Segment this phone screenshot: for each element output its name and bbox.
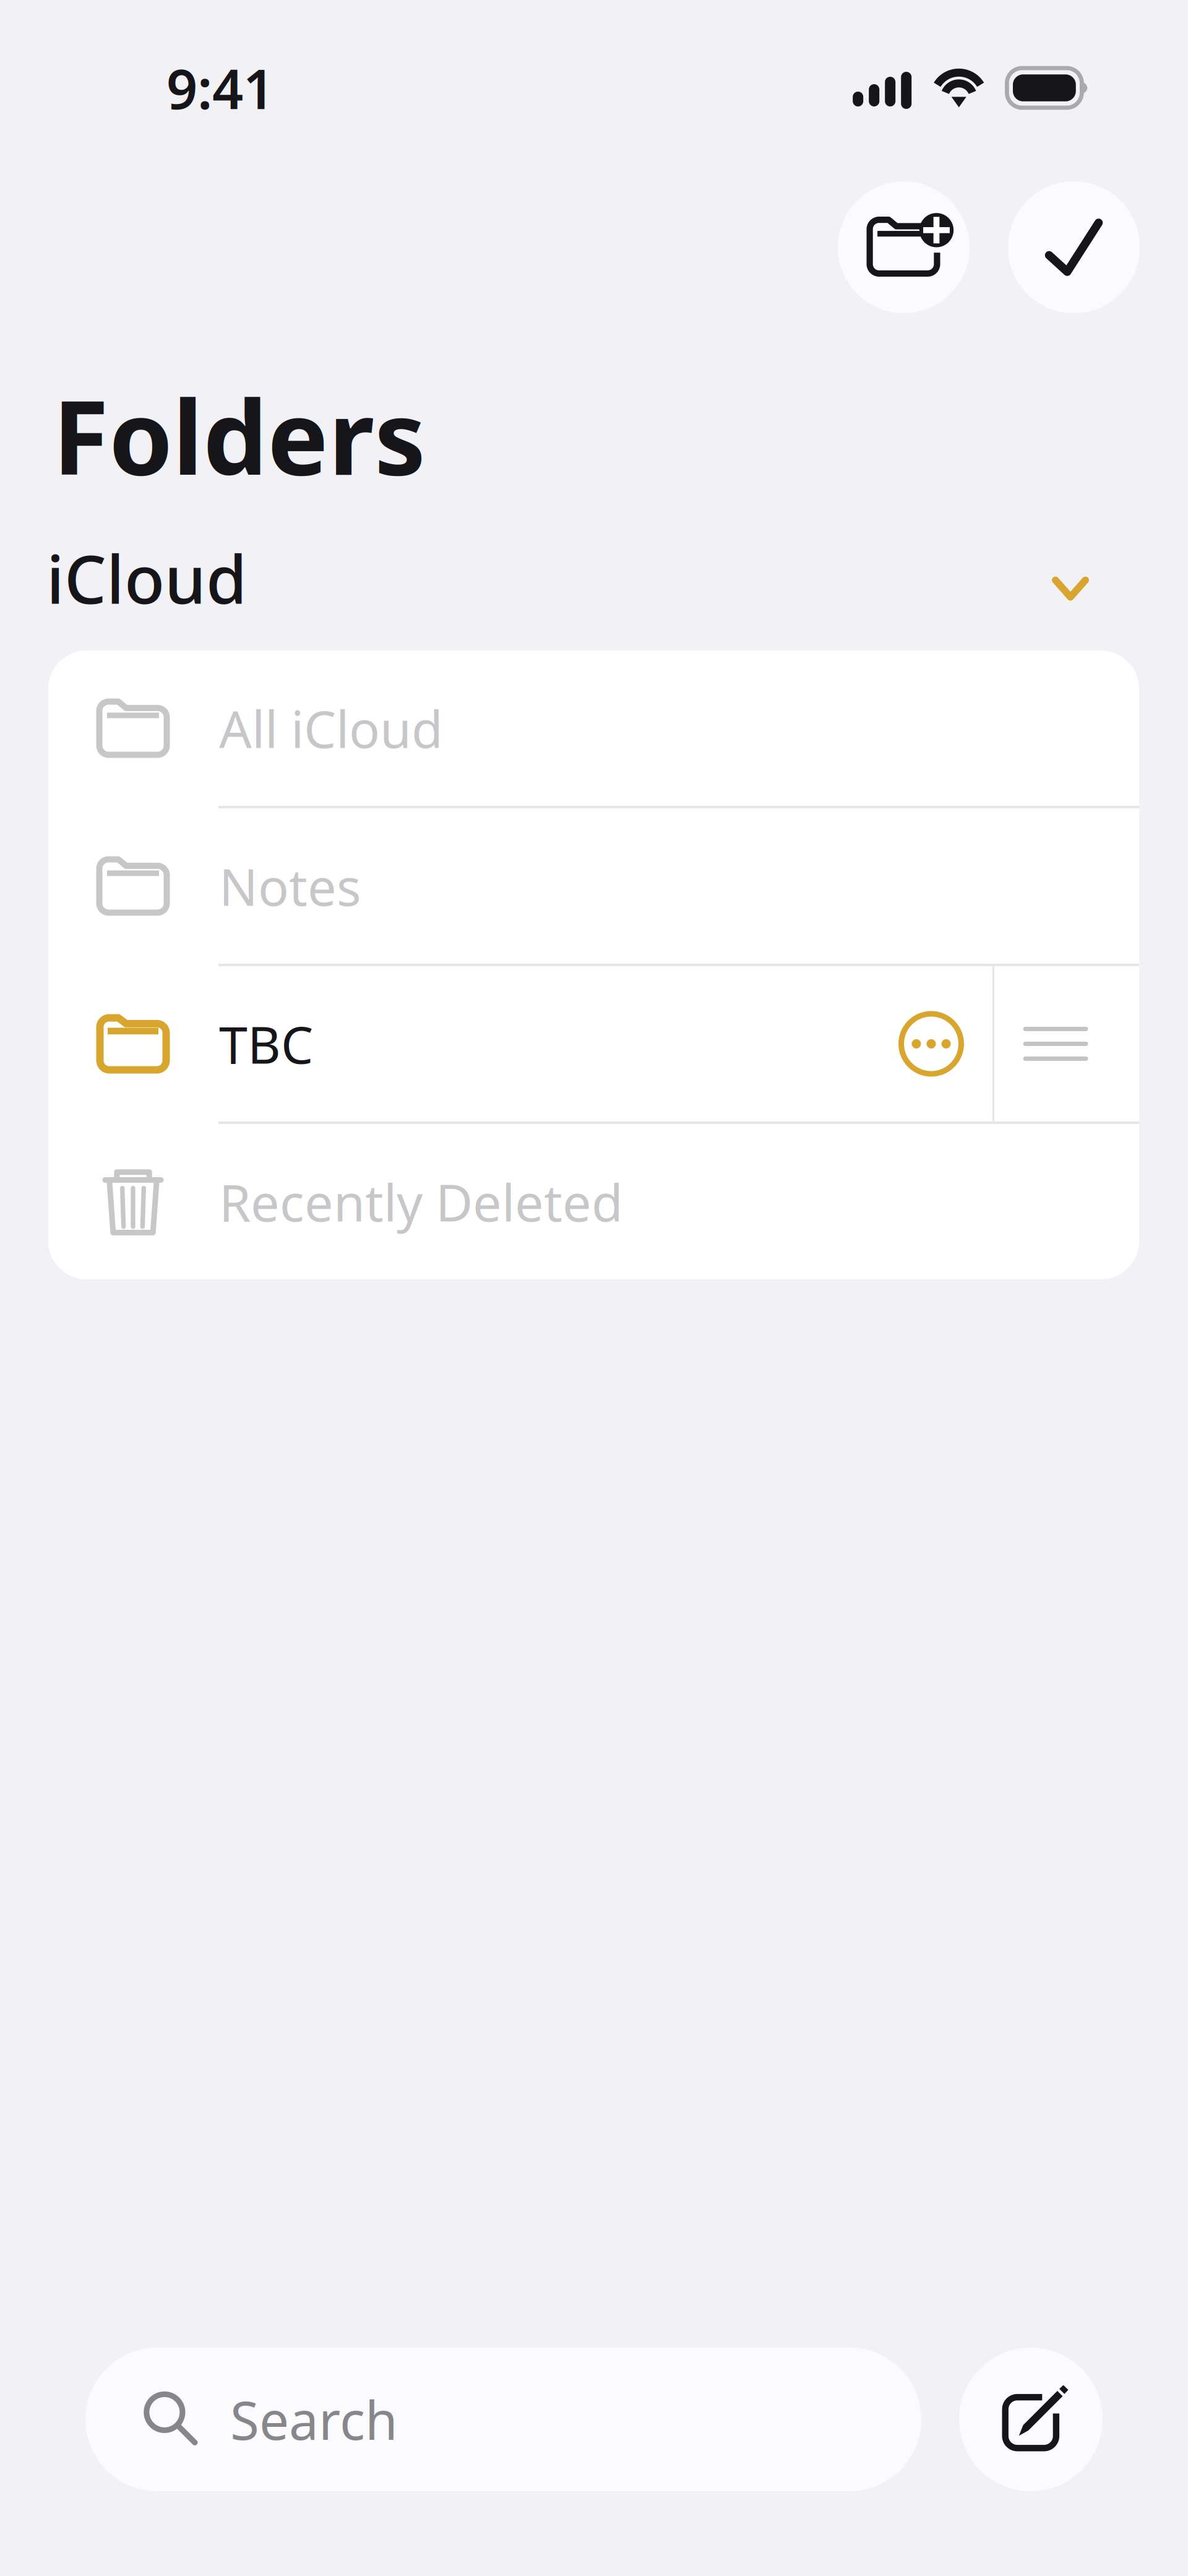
button[interactable]: Reorder (994, 966, 1139, 1122)
staticText: Search (230, 2384, 398, 2454)
staticText: All iCloud (219, 694, 443, 762)
staticText: iCloud (46, 534, 247, 622)
button[interactable]: New Note (959, 2348, 1103, 2491)
button[interactable]: Notes (48, 808, 1139, 964)
button[interactable]: Done (1008, 181, 1140, 313)
staticText: Folders (53, 367, 426, 503)
staticText: Recently Deleted (219, 1168, 623, 1236)
button[interactable]: All iCloud (48, 650, 1139, 806)
button[interactable]: Collapse iCloud (1033, 551, 1108, 605)
staticText: Notes (219, 852, 361, 920)
button[interactable]: Search (85, 2348, 921, 2491)
button[interactable]: More options (867, 966, 992, 1122)
button[interactable]: New Folder (838, 181, 970, 313)
staticText: 9:41 (166, 52, 274, 124)
button[interactable]: TBC (48, 966, 867, 1122)
staticText: TBC (219, 1010, 313, 1078)
button[interactable]: Recently Deleted (48, 1124, 1139, 1279)
